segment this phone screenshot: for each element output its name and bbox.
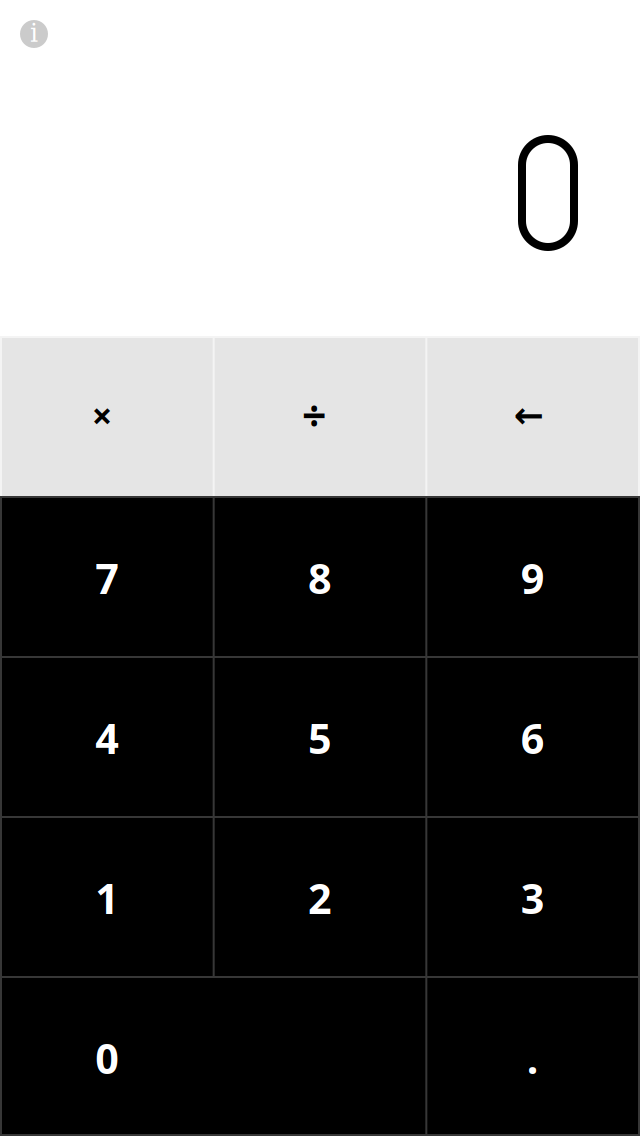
button[interactable]: 9 <box>427 498 638 656</box>
staticText: i <box>30 18 38 48</box>
button[interactable]: 2 <box>215 818 425 976</box>
staticText: . <box>527 1031 539 1085</box>
button[interactable]: Backspace <box>427 338 638 496</box>
button[interactable]: 0 <box>2 978 425 1134</box>
button[interactable]: 4 <box>2 658 213 816</box>
staticText: 7 <box>95 551 119 605</box>
button[interactable]: Divide <box>215 338 425 496</box>
button[interactable]: Multiply <box>2 338 213 496</box>
staticText: 2 <box>308 871 332 925</box>
staticText: 3 <box>521 871 545 925</box>
button[interactable]: 6 <box>427 658 638 816</box>
button[interactable]: 3 <box>427 818 638 976</box>
staticText: 6 <box>521 711 545 765</box>
button[interactable]: 5 <box>215 658 425 816</box>
staticText: 4 <box>95 711 119 765</box>
button[interactable]: 1 <box>2 818 213 976</box>
staticText: ÷ <box>302 387 326 443</box>
staticText: 9 <box>521 551 545 605</box>
button[interactable]: Decimal point <box>427 978 638 1134</box>
button[interactable]: Info <box>6 6 62 62</box>
staticText: 5 <box>308 711 332 765</box>
button[interactable]: 7 <box>2 498 213 656</box>
staticText: × <box>92 391 113 439</box>
staticText: 1 <box>95 871 119 925</box>
staticText: 0 <box>95 1031 119 1085</box>
button[interactable]: 8 <box>215 498 425 656</box>
staticText: ← <box>514 395 544 435</box>
staticText: 8 <box>308 551 332 605</box>
